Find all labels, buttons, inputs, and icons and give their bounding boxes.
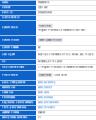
staticText: Build Configuration xyxy=(2,81,25,84)
staticText: Thunderbird xyxy=(38,1,49,4)
staticText: Performance xyxy=(2,96,15,99)
button[interactable]: Open Folder xyxy=(38,73,53,77)
staticText: Memory Use xyxy=(2,86,15,89)
button[interactable]: about:processes xyxy=(38,96,53,99)
staticText: 128.11.0esr xyxy=(38,6,48,9)
staticText: Cache Use xyxy=(2,91,13,94)
staticText: C:\Program Files\Mozilla Thunderbird\thu… xyxy=(38,66,93,68)
button[interactable]: about:memory xyxy=(38,86,52,89)
button[interactable]: about:buildconfig xyxy=(38,81,55,84)
button[interactable]: about:third-party xyxy=(38,106,55,109)
staticText: about:serviceworkers xyxy=(38,101,59,104)
staticText: System History xyxy=(2,38,19,41)
button[interactable]: about:cache xyxy=(38,91,49,94)
staticText: Open Folder xyxy=(39,24,51,27)
staticText: 20250602154230 xyxy=(38,11,52,14)
staticText: Show Update History xyxy=(39,39,61,41)
staticText: Open Folder xyxy=(39,74,51,76)
staticText: 1/1 xyxy=(38,116,41,119)
staticText: about:buildconfig xyxy=(38,81,55,84)
staticText: /Program Files/Mozilla Thunderbird 128.1… xyxy=(38,29,86,31)
staticText: Name xyxy=(2,1,8,4)
staticText: about:processes xyxy=(38,96,53,99)
staticText: OS xyxy=(2,60,6,63)
staticText: Application Binary xyxy=(2,65,24,68)
staticText: about:third-party xyxy=(38,106,55,109)
staticText: Mozilla/5.0 (Windows NT 10.0; Win64; x64… xyxy=(38,53,94,56)
button[interactable]: Open Folder xyxy=(38,24,53,28)
staticText: Windows_NT 10.0 26100 xyxy=(38,60,62,63)
staticText: Version xyxy=(2,6,10,9)
staticText: Profile Folder xyxy=(2,73,18,76)
button[interactable]: Show Update History xyxy=(38,38,63,42)
staticText: (Local drive) xyxy=(54,74,67,76)
staticText: Build ID xyxy=(2,11,13,14)
staticText: Enabled xyxy=(38,111,45,114)
staticText: Registered Service Workers xyxy=(2,101,33,104)
staticText: about:cache xyxy=(38,91,49,94)
staticText: about:memory xyxy=(38,86,52,89)
staticText: Multiprocess Windows xyxy=(2,116,27,119)
staticText: Distribution ID xyxy=(2,16,20,19)
staticText: User Agent xyxy=(2,53,15,56)
staticText: System Folder xyxy=(2,26,18,29)
staticText: Third-party Modules xyxy=(2,106,26,109)
staticText: Launcher Process xyxy=(2,111,19,114)
staticText: esr xyxy=(38,46,41,49)
staticText: System Channel xyxy=(2,46,19,49)
button[interactable]: about:serviceworkers xyxy=(38,101,59,104)
